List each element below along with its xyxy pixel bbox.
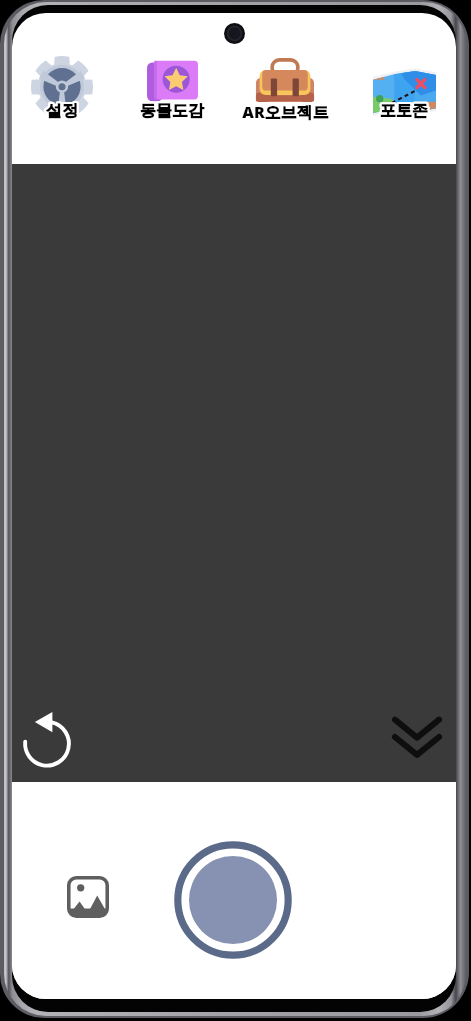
staticText: 포토존 — [380, 101, 428, 121]
staticText: AR오브젝트 — [242, 101, 329, 123]
staticText: 동물도감 — [140, 101, 204, 121]
staticText: 설정 — [46, 101, 78, 121]
button[interactable]: Gallery — [67, 876, 109, 918]
button[interactable]: 포토존 — [344, 13, 456, 143]
button[interactable]: 동물도감 — [112, 13, 232, 143]
staticText: AR오브젝트 — [242, 101, 329, 123]
staticText: 설정 — [46, 101, 78, 121]
button[interactable]: 설정 — [12, 13, 122, 143]
staticText: 동물도감 — [140, 101, 204, 121]
button[interactable]: Shutter — [171, 838, 295, 962]
button[interactable]: Expand — [388, 708, 446, 766]
button[interactable]: AR오브젝트 — [225, 13, 345, 143]
button[interactable]: Reset — [17, 711, 77, 771]
staticText: 포토존 — [380, 101, 428, 121]
